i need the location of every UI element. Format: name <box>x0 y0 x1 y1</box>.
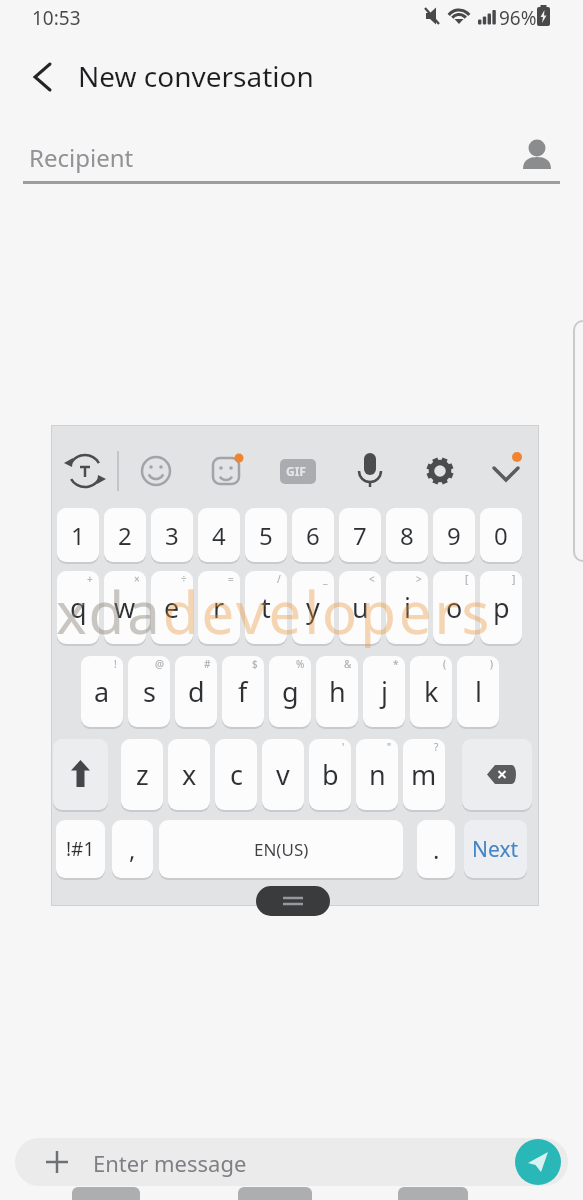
button[interactable] <box>398 1187 468 1200</box>
staticText: x <box>182 756 197 793</box>
button[interactable] <box>418 448 462 492</box>
button[interactable] <box>515 1139 561 1185</box>
button[interactable]: i <box>386 571 428 644</box>
staticText: h <box>329 673 346 710</box>
button[interactable]: k <box>410 656 452 727</box>
staticText: 4 <box>212 519 226 552</box>
staticText: w <box>114 589 136 626</box>
staticText: [ <box>465 572 469 586</box>
staticText: o <box>446 589 463 626</box>
staticText: z <box>136 756 149 793</box>
button[interactable] <box>23 130 560 185</box>
button[interactable]: j <box>363 656 405 727</box>
button[interactable]: 5 <box>245 508 287 562</box>
button[interactable] <box>484 448 528 492</box>
button[interactable] <box>256 886 330 916</box>
button[interactable] <box>274 448 318 492</box>
staticText: 8 <box>400 519 414 552</box>
button[interactable]: h <box>316 656 358 727</box>
button[interactable]: q <box>57 571 99 644</box>
staticText: ( <box>443 657 446 671</box>
staticText: 7 <box>353 519 367 552</box>
button[interactable]: EN(US) <box>159 820 403 878</box>
staticText: i <box>404 589 411 626</box>
staticText: n <box>369 756 386 793</box>
staticText: t <box>261 589 271 626</box>
button[interactable]: 6 <box>292 508 334 562</box>
button[interactable]: u <box>339 571 381 644</box>
button[interactable]: g <box>269 656 311 727</box>
staticText: d <box>188 673 205 710</box>
staticText: !#1 <box>66 836 95 862</box>
button[interactable]: 1 <box>57 508 99 562</box>
staticText: q <box>70 589 87 626</box>
button[interactable]: . <box>417 820 455 878</box>
button[interactable]: 3 <box>151 508 193 562</box>
button[interactable]: n <box>356 739 398 810</box>
button[interactable]: 0 <box>480 508 522 562</box>
staticText: GIF <box>286 463 306 479</box>
staticText: , <box>129 833 136 866</box>
button[interactable] <box>53 739 108 810</box>
button[interactable]: 7 <box>339 508 381 562</box>
staticText: ) <box>490 657 493 671</box>
button[interactable]: f <box>222 656 264 727</box>
button[interactable]: , <box>112 820 153 878</box>
button[interactable]: c <box>215 739 257 810</box>
staticText: 1 <box>71 519 85 552</box>
staticText: ! <box>114 657 117 671</box>
staticText: 3 <box>165 519 179 552</box>
staticText: _ <box>323 572 328 586</box>
staticText: 10:53 <box>32 5 81 31</box>
button[interactable]: r <box>198 571 240 644</box>
staticText: . <box>433 833 440 866</box>
button[interactable] <box>24 58 62 96</box>
staticText: $ <box>252 657 258 671</box>
button[interactable] <box>134 448 178 492</box>
button[interactable]: z <box>121 739 163 810</box>
button[interactable]: o <box>433 571 475 644</box>
button[interactable]: 9 <box>433 508 475 562</box>
staticText: 6 <box>306 519 320 552</box>
button[interactable]: p <box>480 571 522 644</box>
button[interactable]: e <box>151 571 193 644</box>
button[interactable]: m <box>403 739 445 810</box>
staticText: + <box>87 572 93 586</box>
staticText: & <box>344 657 352 671</box>
staticText: 5 <box>259 519 273 552</box>
staticText: f <box>238 673 248 710</box>
button[interactable]: w <box>104 571 146 644</box>
staticText: u <box>352 589 369 626</box>
button[interactable] <box>570 321 583 561</box>
button[interactable]: y <box>292 571 334 644</box>
staticText: c <box>230 756 243 793</box>
button[interactable] <box>72 1187 140 1200</box>
button[interactable]: s <box>128 656 170 727</box>
button[interactable] <box>15 1138 568 1186</box>
staticText: Recipient <box>29 141 134 174</box>
button[interactable]: !#1 <box>56 820 105 878</box>
button[interactable]: 2 <box>104 508 146 562</box>
button[interactable] <box>238 1187 312 1200</box>
button[interactable]: Next <box>464 820 527 878</box>
button[interactable] <box>204 448 248 492</box>
button[interactable]: 8 <box>386 508 428 562</box>
button[interactable]: d <box>175 656 217 727</box>
button[interactable]: a <box>81 656 123 727</box>
staticText: New conversation <box>78 57 314 95</box>
button[interactable]: t <box>245 571 287 644</box>
button[interactable]: 4 <box>198 508 240 562</box>
staticText: y <box>306 589 320 626</box>
button[interactable]: b <box>309 739 351 810</box>
staticText: j <box>381 673 388 710</box>
button[interactable]: l <box>457 656 499 727</box>
staticText: b <box>322 756 339 793</box>
staticText: " <box>387 740 392 754</box>
staticText: ' <box>342 740 345 754</box>
button[interactable] <box>462 739 532 810</box>
button[interactable] <box>62 448 106 492</box>
staticText: 2 <box>118 519 132 552</box>
button[interactable]: v <box>262 739 304 810</box>
button[interactable]: x <box>168 739 210 810</box>
button[interactable] <box>348 448 392 492</box>
